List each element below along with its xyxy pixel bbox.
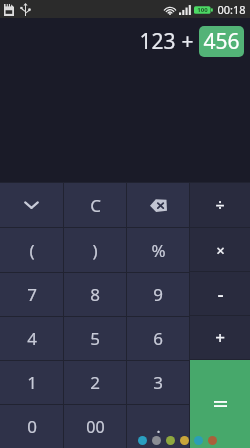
staticText: 2	[90, 371, 100, 394]
staticText: 123	[139, 27, 176, 56]
button[interactable]: 7	[0, 273, 63, 316]
button[interactable]: 6	[127, 317, 189, 360]
staticText: ×	[216, 240, 225, 260]
button[interactable]: Equals	[190, 360, 250, 448]
staticText: )	[92, 239, 98, 262]
button[interactable]: -	[190, 272, 250, 315]
staticText: 8	[90, 283, 100, 306]
staticText: ÷	[215, 194, 225, 216]
button[interactable]: 00	[64, 405, 126, 448]
button[interactable]: )	[64, 228, 126, 272]
staticText: 0	[27, 415, 37, 438]
staticText: 4	[27, 327, 37, 350]
staticText: 6	[153, 327, 163, 350]
button[interactable]: .	[127, 405, 189, 448]
staticText: +	[215, 326, 225, 349]
staticText: 100	[197, 6, 208, 14]
staticText: -	[217, 281, 224, 307]
button[interactable]: 0	[0, 405, 63, 448]
button[interactable]: Collapse keypad	[0, 183, 63, 227]
staticText: 00	[86, 416, 105, 438]
button[interactable]: 3	[127, 361, 189, 404]
staticText: C	[90, 194, 101, 217]
staticText: 5	[90, 327, 100, 350]
staticText: 00:18	[217, 2, 246, 17]
button[interactable]: 9	[127, 273, 189, 316]
staticText: 3	[153, 371, 163, 394]
button[interactable]: ×	[190, 228, 250, 271]
staticText: (	[29, 239, 35, 262]
button[interactable]: %	[127, 228, 189, 272]
staticText: 1	[27, 371, 37, 394]
button[interactable]: (	[0, 228, 63, 272]
staticText: %	[151, 239, 166, 262]
staticText: +	[181, 27, 194, 56]
button[interactable]: C	[64, 183, 126, 227]
button[interactable]: 8	[64, 273, 126, 316]
button[interactable]: ÷	[190, 183, 250, 227]
button[interactable]: +	[190, 316, 250, 359]
button[interactable]: 4	[0, 317, 63, 360]
staticText: 456	[203, 27, 240, 56]
staticText: 9	[153, 283, 163, 306]
button[interactable]: 5	[64, 317, 126, 360]
staticText: .	[156, 415, 161, 438]
button[interactable]: Backspace	[127, 183, 189, 227]
button[interactable]: 1	[0, 361, 63, 404]
staticText: 7	[27, 283, 37, 306]
button[interactable]: 2	[64, 361, 126, 404]
